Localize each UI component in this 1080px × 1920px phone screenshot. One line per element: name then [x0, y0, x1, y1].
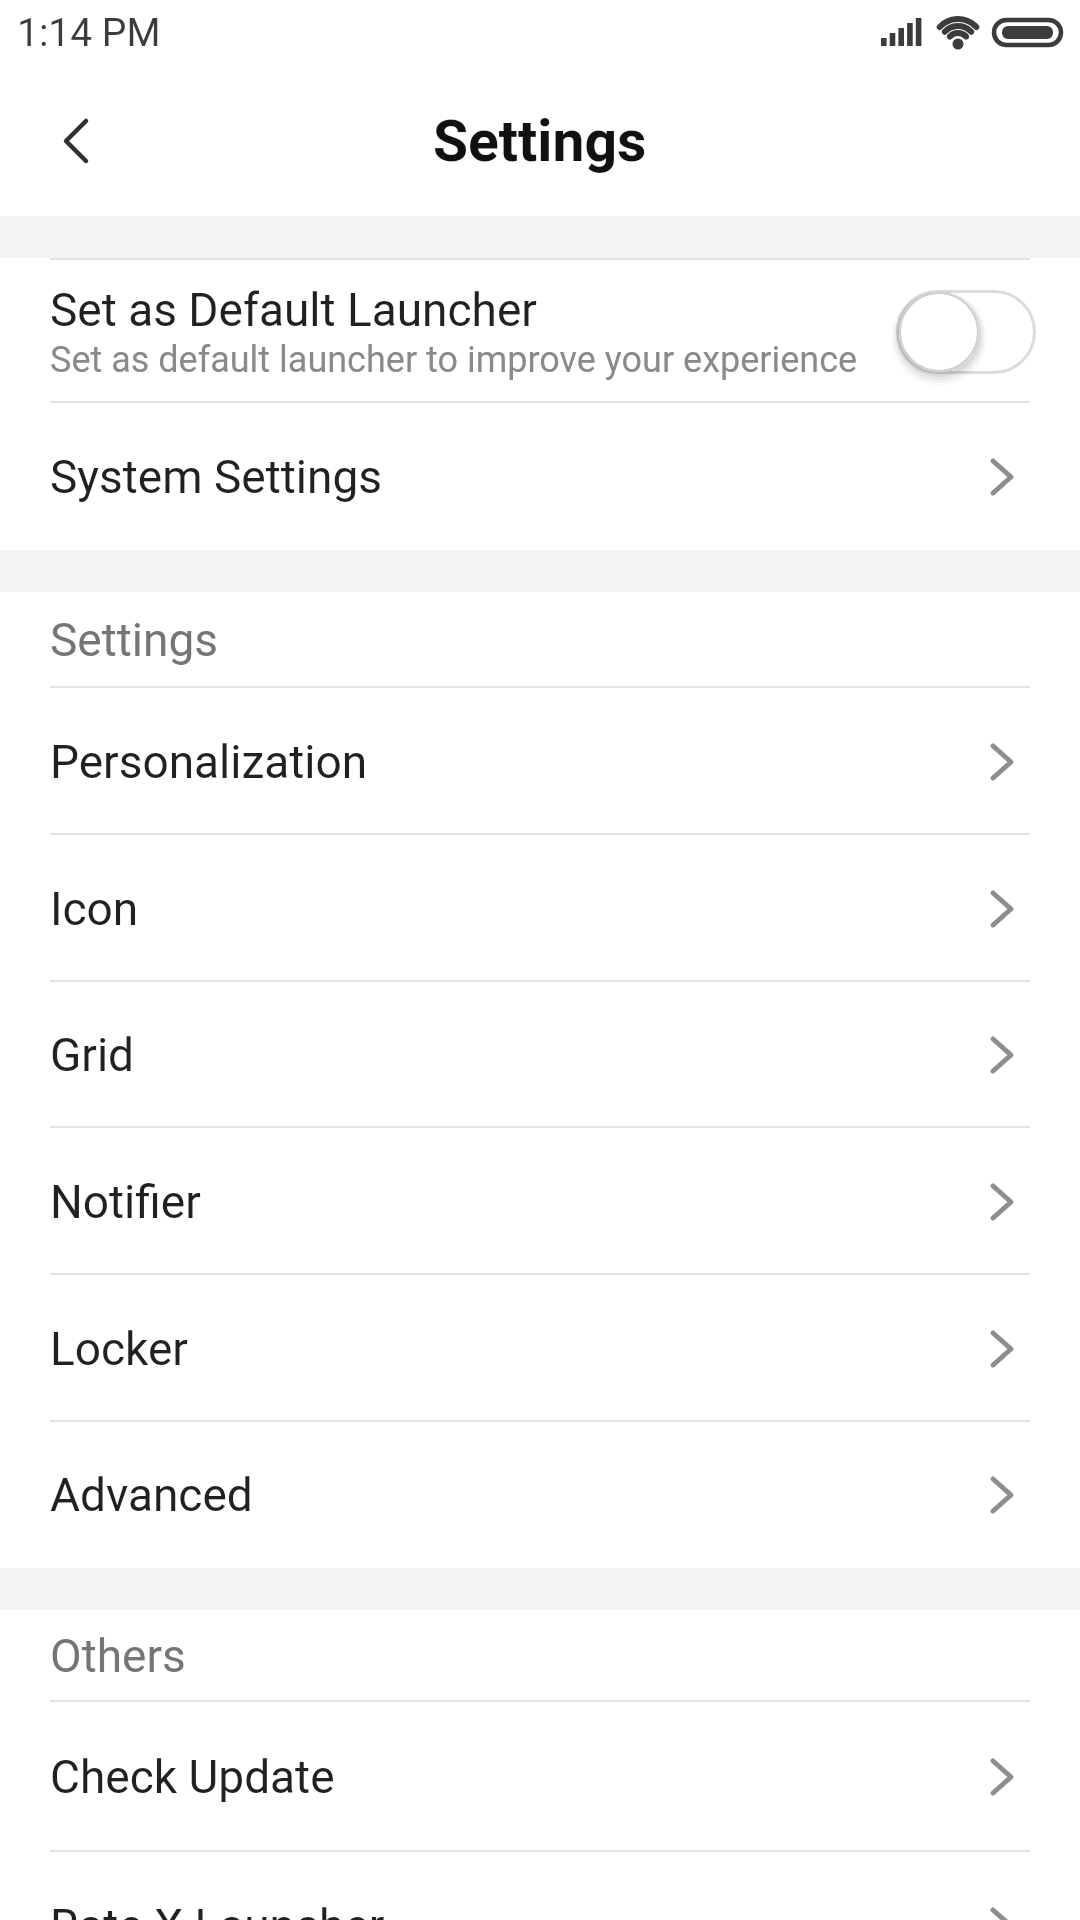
staticText: Check Update [50, 1750, 335, 1804]
button[interactable] [896, 290, 1036, 374]
button[interactable]: Check Update [0, 1702, 1080, 1852]
button[interactable]: Notifier [0, 1128, 1080, 1275]
button[interactable]: Personalization [0, 688, 1080, 835]
staticText: Notifier [50, 1175, 201, 1229]
staticText: System Settings [50, 450, 382, 504]
button[interactable]: Rate X Launcher [0, 1852, 1080, 1920]
staticText: Personalization [50, 735, 368, 789]
staticText: Set as Default Launcher [50, 283, 537, 337]
staticText: 1:14 PM [17, 10, 161, 56]
button[interactable] [44, 109, 108, 173]
staticText: Others [50, 1629, 186, 1683]
button[interactable]: Icon [0, 835, 1080, 982]
staticText: Locker [50, 1322, 188, 1376]
button[interactable]: Locker [0, 1275, 1080, 1422]
button[interactable]: Set as Default Launcher [0, 260, 1080, 403]
staticText: Grid [50, 1028, 135, 1082]
button[interactable]: Advanced [0, 1422, 1080, 1568]
staticText: Set as default launcher to improve your … [50, 339, 858, 381]
staticText: Icon [50, 882, 139, 936]
staticText: Advanced [50, 1468, 253, 1522]
staticText: Settings [50, 613, 218, 667]
button[interactable]: System Settings [0, 403, 1080, 550]
staticText: Rate X Launcher [50, 1899, 385, 1920]
button[interactable]: Grid [0, 982, 1080, 1128]
staticText: Settings [433, 108, 647, 175]
